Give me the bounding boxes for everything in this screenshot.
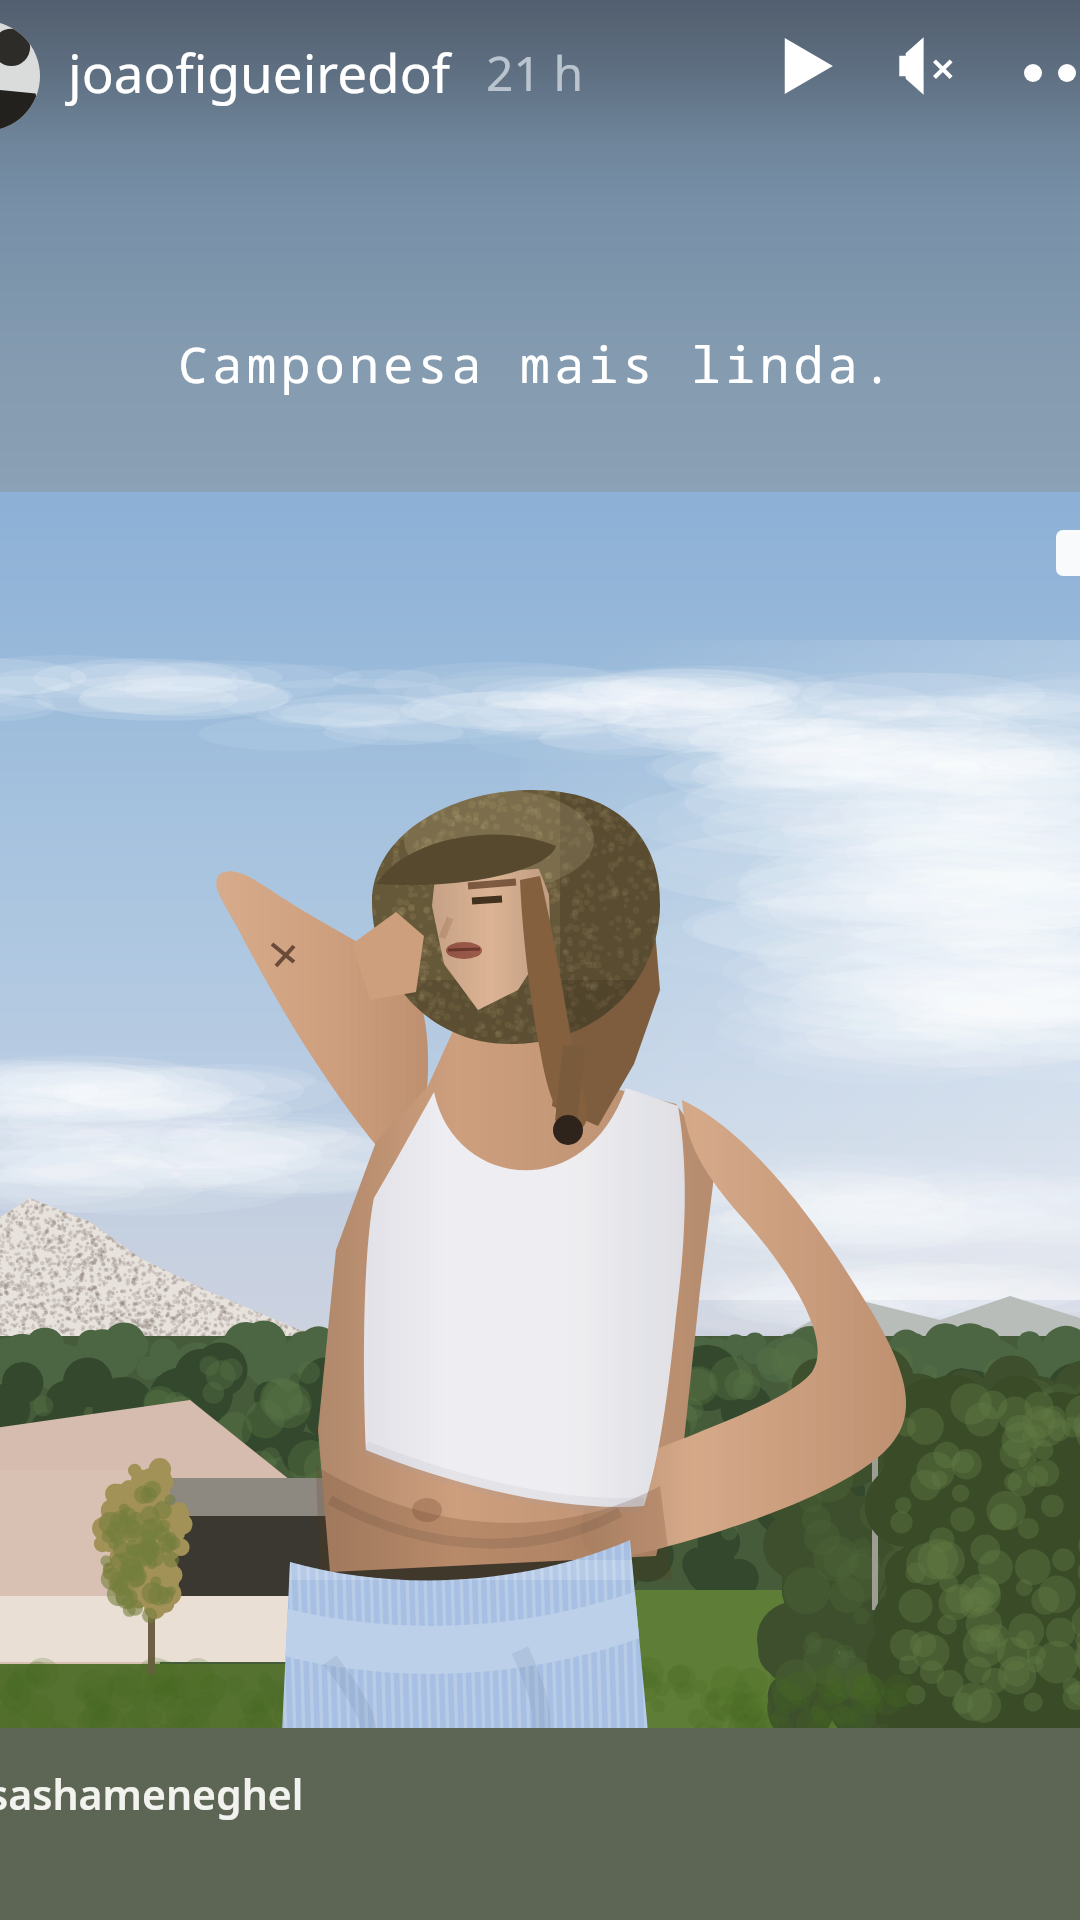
button[interactable]: joaofigueiredof [60,20,604,124]
button[interactable]: More options [1018,42,1080,104]
staticText: sashameneghel [0,1766,304,1822]
button[interactable]: Play [760,20,852,112]
staticText: Camponesa mais linda. [178,330,897,398]
button[interactable]: sashameneghel [0,1752,308,1836]
staticText: 21 h [486,40,584,105]
staticText: joaofigueiredof [68,36,450,108]
button[interactable]: Unmute [884,20,976,112]
button[interactable]: Profile picture [0,21,40,131]
